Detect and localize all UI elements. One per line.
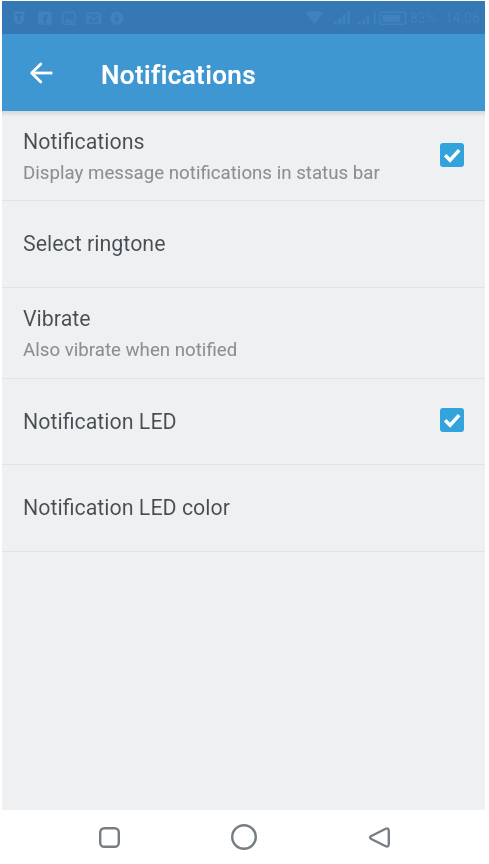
staticText: Notifications <box>23 129 145 154</box>
button[interactable]: Notification LED color <box>2 465 485 551</box>
button[interactable]: Home <box>220 813 268 861</box>
button[interactable]: Back <box>354 813 402 861</box>
other: Toggle Notifications <box>440 143 464 167</box>
button[interactable]: Select ringtone <box>2 201 485 287</box>
other: Toggle Notification LED <box>440 408 464 432</box>
staticText: Notifications <box>101 60 256 90</box>
staticText: Vibrate <box>23 306 91 331</box>
button[interactable]: Notifications <box>2 111 485 200</box>
staticText: Notification LED <box>23 409 177 434</box>
button[interactable]: Notification LED <box>2 379 485 464</box>
staticText: Select ringtone <box>23 231 166 256</box>
button[interactable]: Recent apps <box>85 813 133 861</box>
button[interactable]: Vibrate <box>2 288 485 378</box>
staticText: Notification LED color <box>23 495 230 520</box>
staticText: Also vibrate when notified <box>23 339 238 361</box>
button[interactable]: Back <box>18 49 66 97</box>
staticText: 83% <box>410 10 436 26</box>
staticText: 14:06 <box>445 10 480 26</box>
staticText: Display message notifications in status … <box>23 162 380 184</box>
